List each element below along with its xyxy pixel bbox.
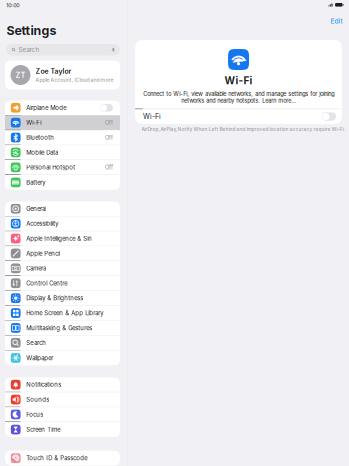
staticText: Off [105,119,113,126]
button[interactable]: Edit [322,17,349,40]
button[interactable]: Focus [5,407,120,422]
staticText: General [26,205,46,212]
staticText: 10:00 [6,2,19,9]
staticText: Notifications [26,381,61,388]
button[interactable]: Home Screen & App Library [5,306,120,321]
staticText: Home Screen & App Library [26,309,103,317]
staticText: Wi-Fi [26,119,41,126]
staticText: Touch ID & Passcode [26,454,87,462]
staticText: AirDrop, AirPlay, Notify When Left Behin… [141,126,344,132]
button[interactable]: Airplane Mode [5,100,120,115]
button[interactable]: Battery [5,175,120,190]
staticText: Wi-Fi [225,74,253,87]
staticText: Connect to Wi-Fi, view available network… [143,91,334,104]
button[interactable]: Accessibility [5,216,120,231]
staticText: Airplane Mode [26,104,66,111]
button[interactable]: Control Centre [5,276,120,291]
staticText: Bluetooth [26,134,54,141]
button[interactable]: Display & Brightness [5,291,120,306]
button[interactable]: Search [5,336,120,350]
staticText: Battery [26,179,45,186]
button[interactable]: Wi-Fi [5,115,120,130]
staticText: Screen Time [26,426,60,433]
button[interactable]: Touch ID & Passcode [5,451,120,466]
button[interactable]: Wallpaper [5,350,120,365]
staticText: Off [105,134,113,141]
button[interactable]: General [5,201,120,216]
staticText: Wi-Fi [143,112,161,121]
button[interactable]: Camera [5,261,120,276]
button[interactable]: Wi-Fi [322,112,336,121]
staticText: Edit [330,17,342,25]
staticText: Search [26,339,46,346]
button[interactable]: Mobile Data [5,145,120,160]
button[interactable]: Apple Intelligence & Siri [5,231,120,246]
button[interactable]: ZT [5,60,120,89]
staticText: Search [18,46,39,53]
staticText: Sounds [26,396,49,403]
button[interactable]: Notifications [5,377,120,392]
staticText: Camera [26,265,46,272]
staticText: Zoe Taylor [35,67,71,75]
staticText: ZT [15,70,25,79]
staticText: Control Centre [26,280,67,287]
button[interactable]: Sounds [5,392,120,407]
staticText: Apple Intelligence & Siri [26,235,91,242]
button[interactable]: Multitasking & Gestures [5,321,120,336]
staticText: Multitasking & Gestures [26,324,92,332]
staticText: Apple Account, iCloud and more [35,77,113,83]
staticText: Off [105,164,113,171]
button[interactable]: Bluetooth [5,130,120,145]
staticText: Accessibility [26,220,58,227]
staticText: Focus [26,411,43,418]
button[interactable]: Screen Time [5,422,120,437]
staticText: Wallpaper [26,354,53,362]
staticText: Mobile Data [26,149,58,156]
button[interactable]: Apple Pencil [5,246,120,261]
staticText: Display & Brightness [26,294,83,302]
staticText: Personal Hotspot [26,164,75,171]
staticText: Apple Pencil [26,250,60,257]
button[interactable]: Personal Hotspot [5,160,120,175]
staticText: Settings [6,23,56,38]
